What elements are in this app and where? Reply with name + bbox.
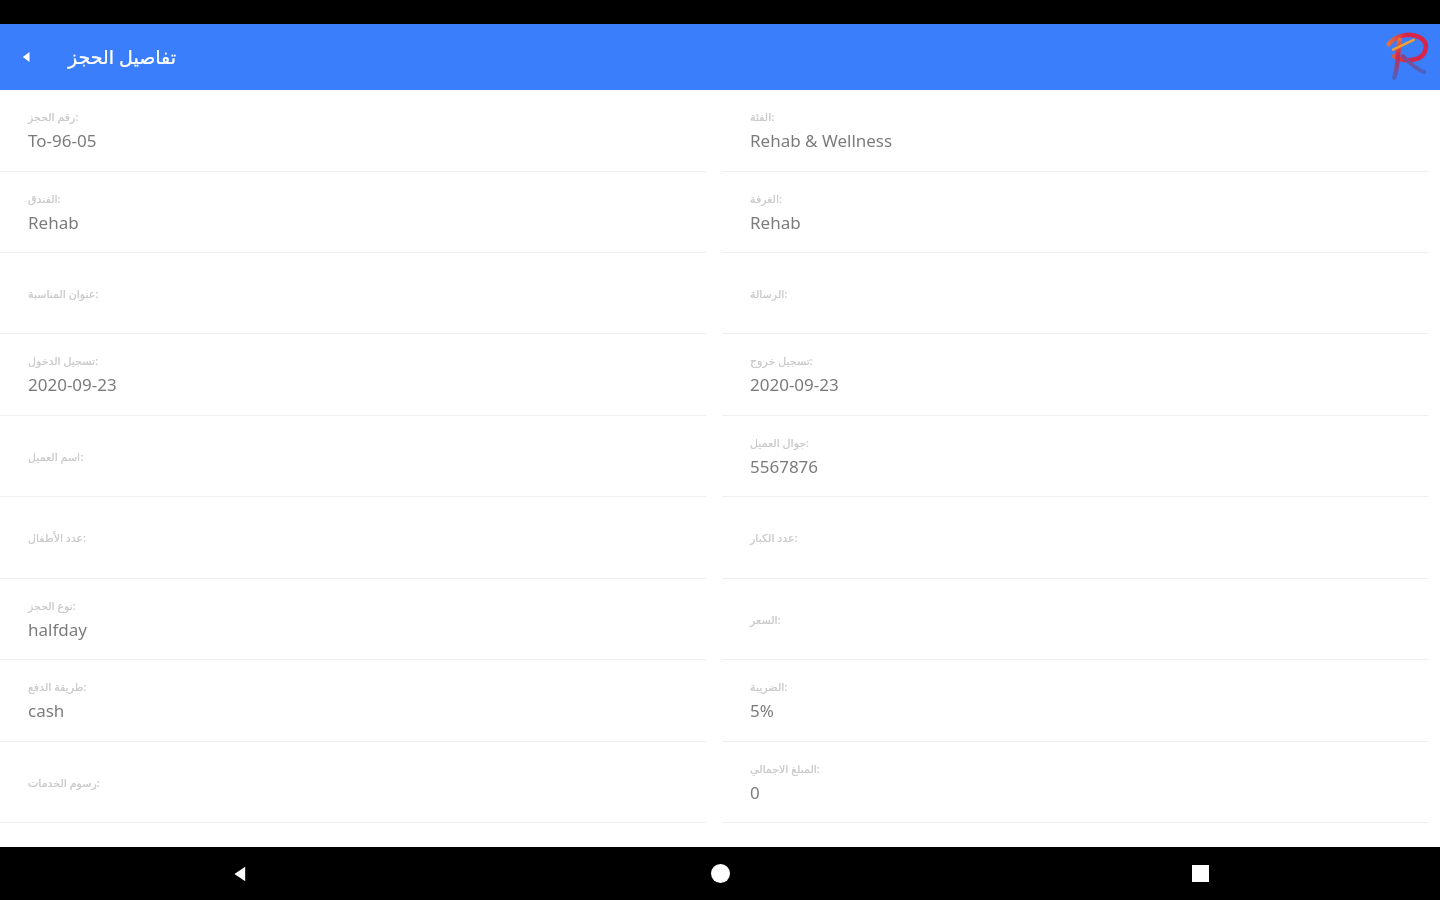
staticText: عنوان المناسبة: <box>28 286 99 301</box>
staticText: 2020-09-23 <box>28 373 117 396</box>
staticText: To-96-05 <box>28 129 97 152</box>
staticText: عدد الكبار: <box>750 530 798 545</box>
button[interactable]: الفندق: <box>0 172 706 253</box>
button[interactable]: المبلغ الاجمالي: <box>722 742 1428 823</box>
button[interactable]: نوع الحجز: <box>0 579 706 660</box>
staticText: halfday <box>28 618 87 641</box>
staticText: المبلغ الاجمالي: <box>750 761 820 776</box>
staticText: تسجيل خروج: <box>750 353 813 368</box>
staticText: 5567876 <box>750 455 819 478</box>
staticText: الرسالة: <box>750 286 788 301</box>
staticText: جوال العميل: <box>750 435 810 450</box>
staticText: طريقة الدفع: <box>28 679 87 694</box>
button[interactable]: Recent apps <box>960 847 1440 900</box>
staticText: رسوم الخدمات: <box>28 775 100 790</box>
staticText: السعر: <box>750 612 781 627</box>
staticText: تسجيل الدخول: <box>28 353 99 368</box>
button[interactable]: الفئة: <box>722 90 1428 172</box>
staticText: الفئة: <box>750 109 775 124</box>
staticText: اسم العميل: <box>28 449 84 464</box>
button[interactable]: رقم الحجز: <box>0 90 706 172</box>
staticText: cash <box>28 699 65 722</box>
button[interactable]: الغرفة: <box>722 172 1428 253</box>
staticText: رقم الحجز: <box>28 109 79 124</box>
staticText: Rehab & Wellness <box>750 129 893 152</box>
button[interactable]: الضريبة: <box>722 660 1428 742</box>
staticText: عدد الأطفال: <box>28 530 87 545</box>
staticText: Rehab <box>28 211 79 234</box>
staticText: الغرفة: <box>750 191 782 206</box>
staticText: Rehab <box>750 211 801 234</box>
staticText: 2020-09-23 <box>750 373 839 396</box>
button[interactable]: عنوان المناسبة: <box>0 253 706 334</box>
button[interactable]: رسوم الخدمات: <box>0 742 706 823</box>
button[interactable]: Home <box>480 847 960 900</box>
staticText: نوع الحجز: <box>28 598 76 613</box>
staticText: الفندق: <box>28 191 61 206</box>
button[interactable]: Back <box>0 847 480 900</box>
button[interactable]: جوال العميل: <box>722 416 1428 497</box>
button[interactable]: طريقة الدفع: <box>0 660 706 742</box>
staticText: 5% <box>750 699 774 722</box>
button[interactable]: تسجيل خروج: <box>722 334 1428 416</box>
button[interactable]: Back <box>4 35 48 79</box>
button[interactable]: تسجيل الدخول: <box>0 334 706 416</box>
staticText: الضريبة: <box>750 679 788 694</box>
staticText: 0 <box>750 781 760 804</box>
staticText: تفاصيل الحجز <box>68 44 176 70</box>
button[interactable]: Logo <box>1374 24 1436 86</box>
